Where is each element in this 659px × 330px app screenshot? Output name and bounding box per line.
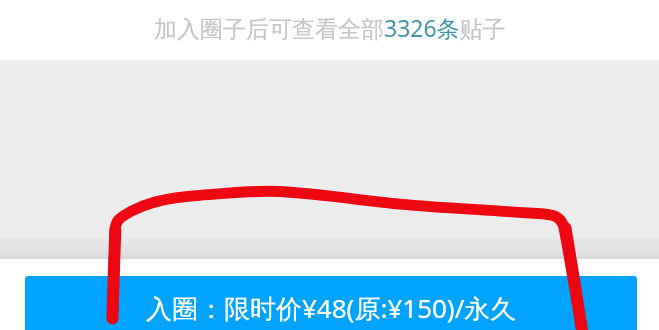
staticText: 加入圈子后可查看全部3326条贴子: [154, 12, 506, 43]
button[interactable]: 入圈：限时价¥48(原:¥150)/永久: [25, 276, 637, 330]
button[interactable]: 加入圈子后可查看全部3326条贴子: [0, 0, 659, 55]
staticText: 入圈：限时价¥48(原:¥150)/永久: [146, 290, 517, 326]
